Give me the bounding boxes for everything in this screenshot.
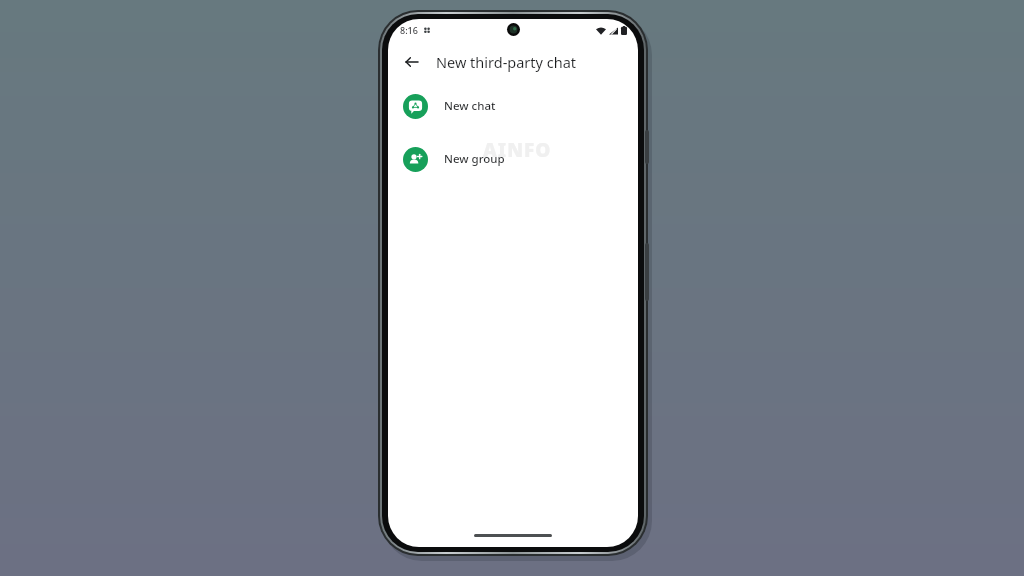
staticText: 8:16 bbox=[400, 24, 418, 36]
staticText: New group bbox=[444, 151, 505, 167]
button[interactable]: New group bbox=[388, 140, 638, 178]
staticText: New third-party chat bbox=[436, 52, 577, 72]
staticText: New chat bbox=[444, 98, 496, 114]
button[interactable]: Back bbox=[396, 46, 428, 78]
staticText: AINFO bbox=[483, 137, 552, 163]
button[interactable]: New chat bbox=[388, 87, 638, 125]
